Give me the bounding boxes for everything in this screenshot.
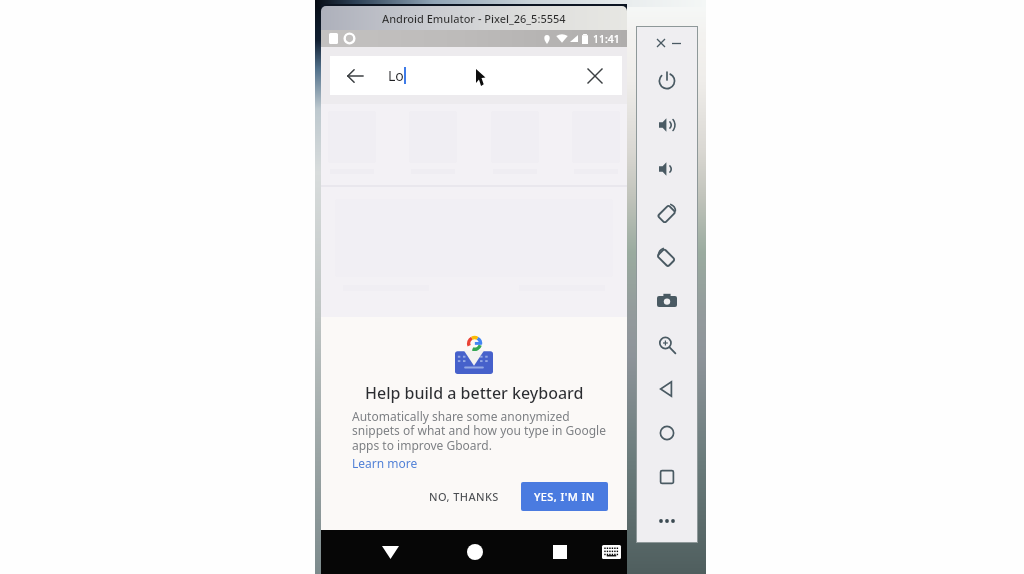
- staticText: Android Emulator - Pixel_26_5:5554: [382, 11, 566, 26]
- button[interactable]: Close: [653, 35, 669, 51]
- button[interactable]: Back: [340, 61, 370, 91]
- button[interactable]: Learn more: [352, 455, 418, 471]
- button[interactable]: YES, I'M IN: [521, 482, 608, 511]
- button[interactable]: Home: [454, 530, 496, 574]
- button[interactable]: Take screenshot: [637, 279, 697, 323]
- button[interactable]: Zoom: [637, 323, 697, 367]
- button[interactable]: Recent apps: [539, 530, 581, 574]
- button[interactable]: Home: [637, 411, 697, 455]
- button[interactable]: More options: [637, 499, 697, 542]
- staticText: Learn more: [352, 455, 418, 471]
- button[interactable]: Clear search: [581, 62, 609, 90]
- button[interactable]: NO, THANKS: [419, 481, 509, 512]
- button[interactable]: Minimize: [669, 35, 683, 51]
- staticText: YES, I'M IN: [534, 489, 595, 504]
- button[interactable]: Hide keyboard: [369, 530, 411, 574]
- button[interactable]: Volume up: [637, 103, 697, 147]
- staticText: Lo: [388, 66, 404, 85]
- button[interactable]: Back: [637, 367, 697, 411]
- button[interactable]: Power: [637, 59, 697, 103]
- button[interactable]: Rotate left: [637, 191, 697, 235]
- button[interactable]: Overview: [637, 455, 697, 499]
- button[interactable]: Volume down: [637, 147, 697, 191]
- button[interactable]: Change keyboard: [594, 530, 627, 574]
- staticText: Automatically share some anonymized snip…: [352, 408, 606, 454]
- staticText: NO, THANKS: [429, 489, 499, 504]
- staticText: Help build a better keyboard: [365, 382, 584, 404]
- staticText: 11:41: [593, 32, 620, 46]
- button[interactable]: Rotate right: [637, 235, 697, 279]
